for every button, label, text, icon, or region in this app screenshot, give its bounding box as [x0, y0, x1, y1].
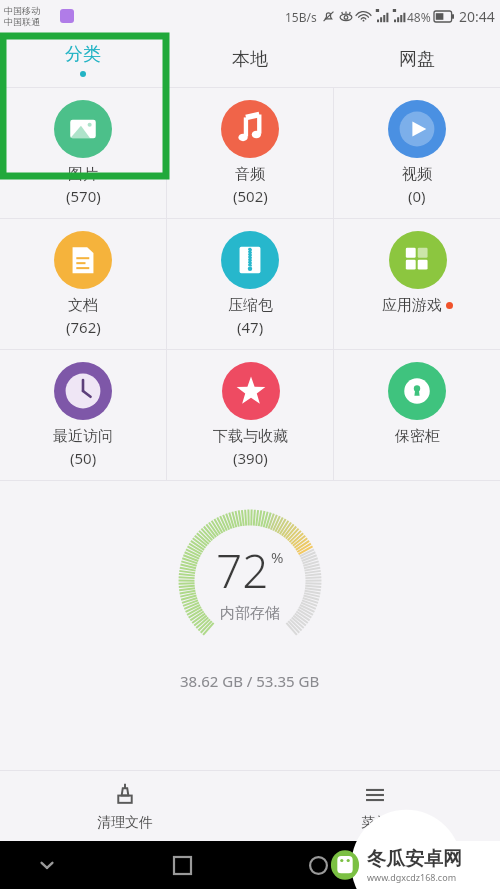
staticText: 音频	[235, 165, 265, 184]
staticText: 下载与收藏	[213, 427, 288, 446]
staticText: (762)	[66, 317, 101, 337]
button[interactable]: 网盘	[333, 32, 500, 87]
button[interactable]: 清理文件	[0, 771, 250, 841]
staticText: 网盘	[399, 48, 435, 71]
staticText: 15B/s	[285, 9, 317, 25]
button[interactable]: 应用游戏	[334, 219, 500, 349]
staticText: 视频	[402, 165, 432, 184]
staticText: 清理文件	[97, 814, 153, 832]
staticText: 图片	[68, 165, 98, 184]
staticText: 最近访问	[53, 427, 113, 446]
staticText: 72	[216, 539, 269, 602]
staticText: 本地	[232, 48, 268, 71]
staticText: (390)	[233, 448, 268, 468]
button[interactable]: 压缩包	[167, 219, 333, 349]
staticText: (570)	[66, 186, 101, 206]
staticText: 压缩包	[228, 296, 273, 315]
staticText: (47)	[237, 317, 264, 337]
button[interactable]: 分类	[0, 32, 166, 87]
button[interactable]: Home	[301, 848, 335, 882]
button[interactable]: 最近访问	[0, 350, 166, 480]
button[interactable]: 下载与收藏	[167, 350, 333, 480]
button[interactable]: 音频	[167, 88, 333, 218]
button[interactable]: 菜单	[250, 771, 500, 841]
staticText: 应用游戏	[382, 296, 442, 315]
staticText: 20:44	[459, 7, 495, 26]
staticText: 38.62 GB / 53.35 GB	[180, 671, 320, 691]
staticText: 中国移动	[4, 5, 40, 16]
button[interactable]: 保密柜	[334, 350, 500, 480]
staticText: 48%	[407, 9, 431, 25]
staticText: 菜单	[361, 814, 389, 832]
button[interactable]: Back	[436, 848, 470, 882]
staticText: 中国联通	[4, 16, 40, 27]
staticText: 分类	[65, 43, 101, 66]
staticText: 保密柜	[395, 427, 440, 446]
staticText: www.dgxcdz168.com	[367, 871, 457, 883]
staticText: (50)	[70, 448, 97, 468]
staticText: 内部存储	[220, 604, 280, 623]
button[interactable]: Hide keyboard	[30, 848, 64, 882]
button[interactable]: Recent apps	[165, 848, 199, 882]
staticText: 冬瓜安卓网	[367, 847, 462, 871]
staticText: 文档	[68, 296, 98, 315]
staticText: %	[271, 547, 284, 567]
staticText: (502)	[233, 186, 268, 206]
staticText: (0)	[408, 186, 426, 206]
button[interactable]: 视频	[334, 88, 500, 218]
button[interactable]: 图片	[0, 88, 166, 218]
button[interactable]: 本地	[166, 32, 333, 87]
button[interactable]: 文档	[0, 219, 166, 349]
